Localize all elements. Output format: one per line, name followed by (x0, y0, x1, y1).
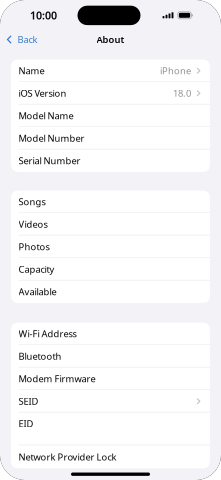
staticText: Photos (18, 241, 49, 253)
button[interactable]: Model Name (11, 104, 210, 127)
staticText: Videos (18, 218, 47, 230)
staticText: 18.0 (173, 87, 191, 99)
button[interactable]: Songs (11, 190, 210, 213)
staticText: Model Number (18, 132, 84, 144)
button[interactable]: Serial Number (11, 149, 210, 172)
button[interactable]: Capacity (11, 258, 210, 280)
button[interactable]: Back (0, 29, 37, 50)
staticText: Songs (18, 196, 45, 208)
staticText: SEID (18, 395, 38, 407)
staticText: Name (18, 65, 44, 77)
button[interactable]: Model Number (11, 127, 210, 149)
button[interactable]: EID (11, 412, 210, 435)
staticText: Serial Number (18, 155, 80, 167)
staticText: Back (17, 33, 37, 46)
staticText: Bluetooth (18, 350, 61, 362)
button[interactable]: Name (11, 59, 210, 82)
staticText: Network Provider Lock (18, 451, 116, 463)
button[interactable]: Wi-Fi Address (11, 322, 210, 345)
staticText: Capacity (18, 263, 54, 275)
staticText: Modem Firmware (18, 373, 95, 385)
staticText: Wi-Fi Address (18, 328, 76, 340)
button[interactable]: Bluetooth (11, 345, 210, 367)
staticText: EID (18, 418, 33, 430)
staticText: iOS Version (18, 87, 66, 99)
staticText: Available (18, 286, 56, 298)
staticText: Model Name (18, 110, 73, 122)
button[interactable]: Photos (11, 235, 210, 258)
button[interactable]: Available (11, 280, 210, 303)
button[interactable]: Videos (11, 213, 210, 235)
button[interactable]: iOS Version (11, 82, 210, 104)
button[interactable]: Network Provider Lock (11, 445, 210, 468)
staticText: 10:00 (30, 8, 57, 22)
staticText: About (96, 33, 124, 46)
button[interactable]: SEID (11, 390, 210, 412)
button[interactable]: Modem Firmware (11, 367, 210, 390)
staticText: iPhone (160, 65, 191, 77)
